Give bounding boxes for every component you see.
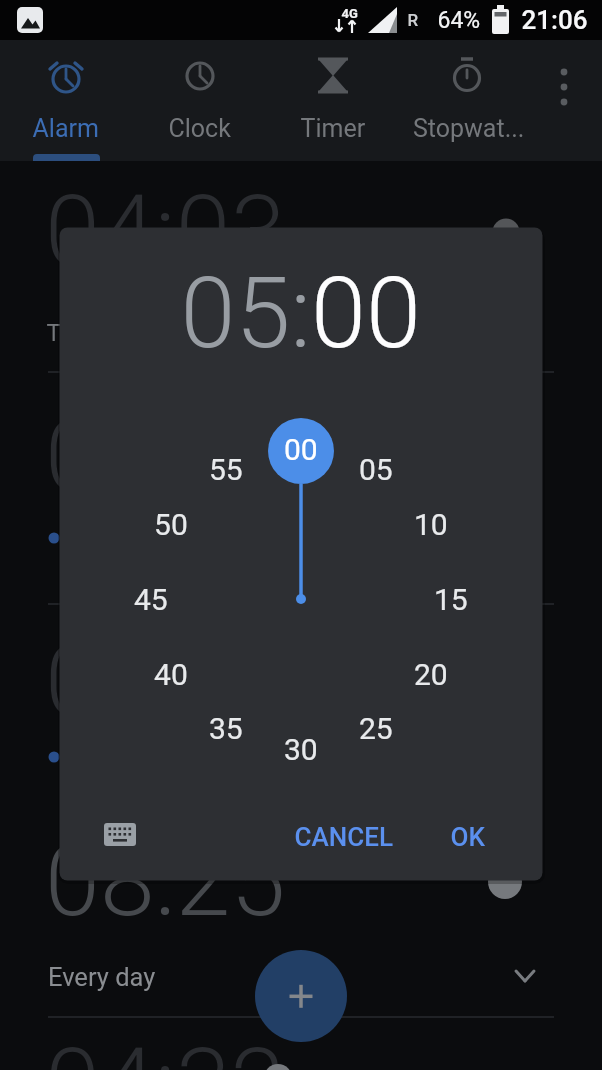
button[interactable] — [277, 725, 325, 773]
button[interactable] — [352, 445, 400, 493]
button[interactable] — [147, 500, 195, 548]
button[interactable] — [352, 705, 400, 753]
button[interactable] — [147, 650, 195, 698]
button[interactable] — [96, 813, 144, 857]
button[interactable] — [500, 953, 550, 1001]
button[interactable] — [268, 40, 402, 161]
button[interactable] — [40, 955, 180, 999]
button[interactable] — [0, 40, 134, 161]
button[interactable] — [202, 445, 250, 493]
button[interactable] — [282, 810, 407, 864]
button[interactable] — [407, 500, 455, 548]
button[interactable] — [178, 258, 290, 366]
button[interactable] — [432, 810, 504, 864]
button[interactable] — [134, 40, 268, 161]
button[interactable] — [402, 40, 536, 161]
button[interactable] — [202, 705, 250, 753]
button[interactable] — [277, 425, 325, 473]
button[interactable] — [540, 52, 588, 100]
button[interactable] — [255, 950, 347, 1042]
button[interactable] — [310, 258, 422, 366]
button[interactable] — [127, 575, 175, 623]
button[interactable] — [407, 650, 455, 698]
button[interactable] — [427, 575, 475, 623]
